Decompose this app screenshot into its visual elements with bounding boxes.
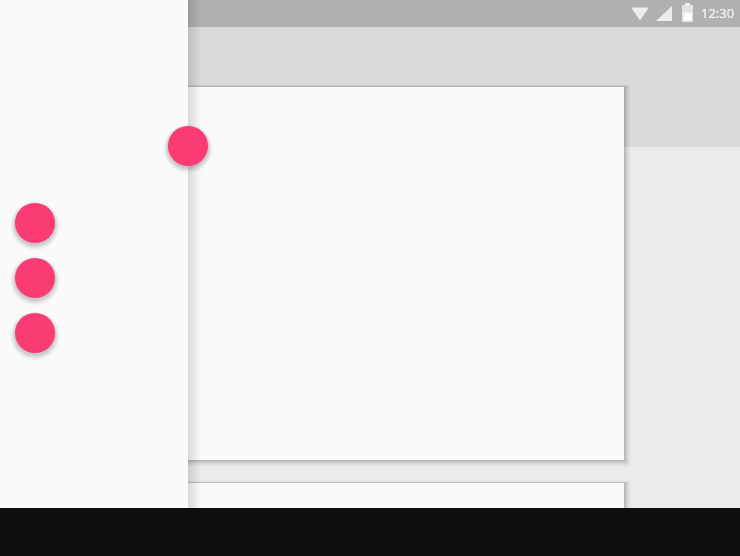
button[interactable]: Edit [15,258,55,298]
button[interactable]: Card [188,483,624,508]
staticText: 12:30 [701,4,735,22]
button[interactable]: Card [188,87,624,460]
button[interactable]: Share [15,203,55,243]
button[interactable]: Add [15,313,55,353]
button[interactable]: Navigation drawer [0,27,188,508]
button[interactable]: Create [168,126,208,166]
